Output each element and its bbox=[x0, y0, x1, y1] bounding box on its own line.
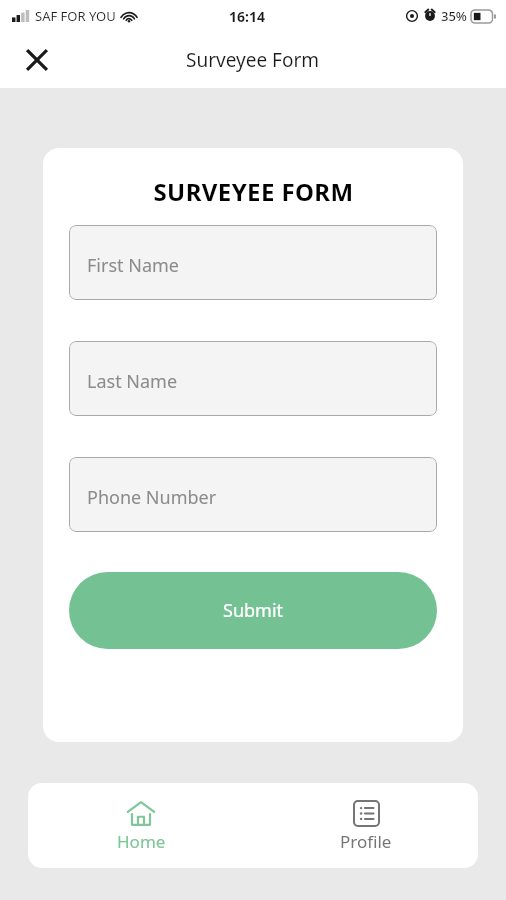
staticText: First Name bbox=[87, 253, 179, 278]
staticText: Profile bbox=[340, 830, 392, 853]
staticText: 16:14 bbox=[229, 7, 265, 26]
button[interactable]: Close bbox=[16, 39, 58, 81]
button[interactable]: Submit bbox=[69, 572, 437, 649]
button[interactable]: First Name bbox=[69, 225, 437, 300]
staticText: Surveyee Form bbox=[186, 47, 320, 73]
staticText: Submit bbox=[223, 598, 284, 623]
button[interactable]: Profile bbox=[301, 790, 431, 862]
staticText: Home bbox=[117, 830, 166, 853]
button[interactable]: Last Name bbox=[69, 341, 437, 416]
staticText: SAF FOR YOU bbox=[35, 7, 116, 25]
button[interactable]: Phone Number bbox=[69, 457, 437, 532]
staticText: Last Name bbox=[87, 369, 178, 394]
staticText: SURVEYEE FORM bbox=[153, 175, 354, 208]
staticText: Phone Number bbox=[87, 485, 217, 510]
staticText: 35% bbox=[441, 7, 467, 25]
button[interactable]: Home bbox=[76, 790, 206, 862]
